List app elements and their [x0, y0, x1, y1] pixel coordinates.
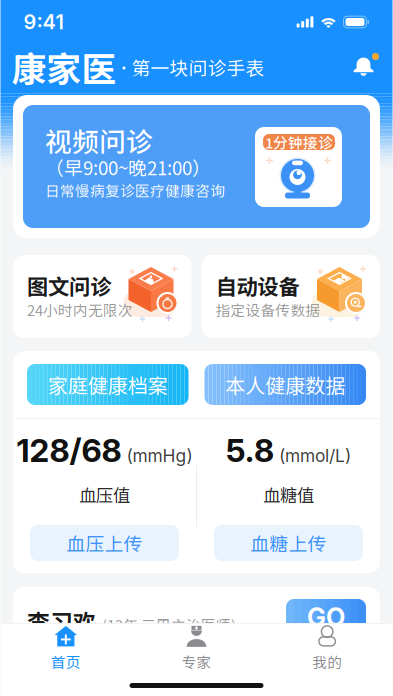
button[interactable]: 家庭健康档案 — [27, 364, 188, 405]
staticText: 家庭健康档案 — [48, 370, 168, 399]
button[interactable]: 图文问诊 — [13, 255, 191, 338]
button[interactable]: 视频问诊 — [13, 95, 380, 238]
button[interactable]: 本人健康数据 — [204, 364, 366, 405]
staticText: 血压上传 — [66, 529, 142, 556]
staticText: 视频问诊 — [45, 121, 153, 159]
staticText: 首页 — [51, 651, 81, 672]
staticText: 血糖上传 — [250, 529, 326, 556]
staticText: 指定设备传数据 — [215, 299, 320, 320]
button[interactable]: 通知 — [346, 50, 380, 84]
staticText: 128/68 — [16, 431, 121, 470]
staticText: GO — [307, 602, 345, 632]
staticText: 康家医 — [11, 42, 116, 92]
button[interactable]: GO — [286, 599, 366, 635]
staticText: 血压值 — [79, 482, 130, 507]
staticText: （早9:00~晚21:00） — [45, 153, 211, 180]
staticText: 我的 — [312, 651, 342, 672]
button[interactable]: 首页 — [0, 623, 131, 673]
staticText: 第一块问诊手表 — [131, 53, 264, 80]
button[interactable]: 专家 — [131, 623, 262, 673]
button[interactable]: 自动设备 — [201, 255, 380, 338]
button[interactable]: 血压上传 — [30, 525, 179, 561]
staticText: 专家 — [181, 651, 211, 672]
staticText: 李习欢 — [27, 605, 96, 637]
staticText: 日常慢病复诊医疗健康咨询 — [45, 179, 225, 201]
staticText: (12年 三甲主治医师) — [102, 614, 236, 635]
staticText: 24小时内无限次 — [27, 299, 133, 320]
button[interactable]: 我的 — [262, 623, 392, 673]
staticText: 5.8 — [226, 431, 274, 470]
button[interactable]: 血糖上传 — [214, 525, 363, 561]
staticText: 自动设备 — [215, 270, 299, 301]
staticText: (mmHg) — [126, 445, 192, 466]
staticText: 本人健康数据 — [225, 370, 345, 399]
staticText: 9:41 — [23, 10, 63, 34]
staticText: 图文问诊 — [27, 270, 111, 301]
staticText: 1分钟接诊 — [265, 131, 333, 153]
staticText: 血糖值 — [263, 482, 314, 507]
staticText: (mmol/L) — [279, 445, 351, 466]
